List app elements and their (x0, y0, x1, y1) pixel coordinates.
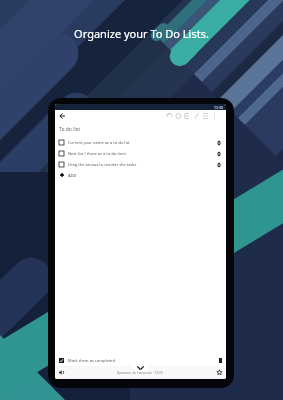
staticText: Drag the arrows to reorder the tasks (68, 162, 137, 167)
button[interactable]: Bullets (201, 111, 210, 121)
button[interactable]: Current your name as a to-do list (55, 137, 226, 148)
button[interactable]: Italic (192, 111, 201, 121)
button[interactable]: Bold (183, 111, 192, 121)
button[interactable]: Volume (57, 368, 66, 377)
staticText: 12:30 (214, 105, 223, 110)
staticText: Dynam in 3D Paint Dou · 12:30 (117, 371, 163, 375)
button[interactable]: Back (57, 111, 68, 121)
button[interactable]: ADD (55, 170, 226, 180)
button[interactable]: Reorder (216, 151, 222, 157)
staticText: Current your name as a to-do list (68, 140, 130, 145)
button[interactable]: Redo (174, 111, 183, 121)
staticText: To do list (59, 126, 80, 133)
button[interactable]: Collapse (132, 364, 149, 372)
staticText: ADD (68, 173, 77, 178)
staticText: Organize your To Do Lists. (0, 26, 283, 41)
button[interactable]: More (210, 111, 219, 121)
button[interactable]: Reorder (216, 140, 222, 146)
button[interactable]: Mark them as completed (55, 354, 226, 366)
staticText: Mark them as completed (68, 358, 115, 363)
staticText: Next list / there as a to-do item (68, 151, 126, 156)
button[interactable]: Next list / there as a to-do item (55, 148, 226, 159)
button[interactable]: Favorite (215, 368, 224, 377)
button[interactable]: Drag the arrows to reorder the tasks (55, 159, 226, 170)
button[interactable]: Undo (165, 111, 174, 121)
button[interactable]: Reorder (216, 162, 222, 168)
